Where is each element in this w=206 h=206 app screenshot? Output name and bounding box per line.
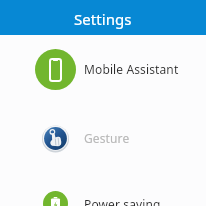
button[interactable]: Power saving — [0, 173, 206, 206]
staticText: Mobile Assistant — [84, 61, 179, 77]
staticText: Gesture — [84, 130, 130, 146]
staticText: Settings — [74, 9, 132, 29]
button[interactable]: Mobile Assistant — [0, 35, 206, 103]
button[interactable]: Gesture — [0, 103, 206, 173]
staticText: Power saving — [84, 196, 161, 206]
